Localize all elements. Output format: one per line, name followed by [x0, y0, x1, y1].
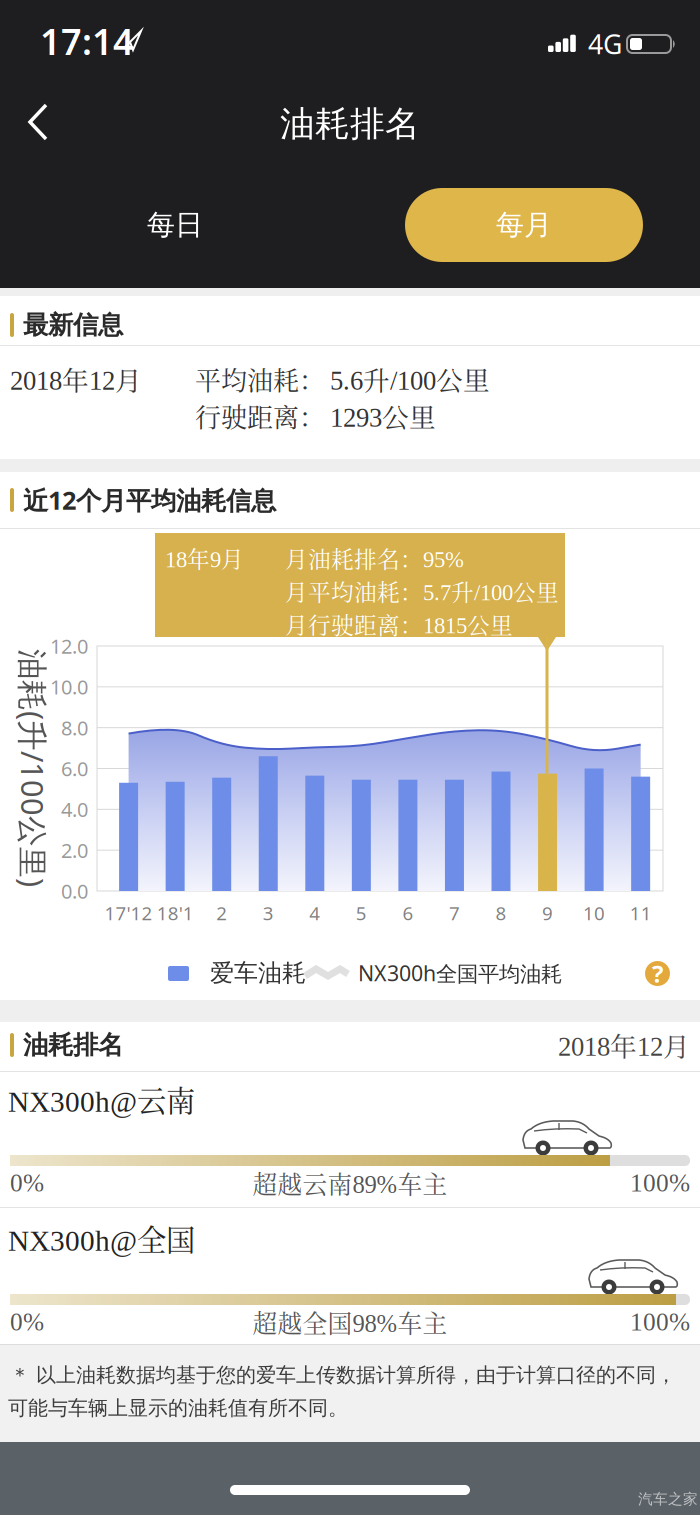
staticText: 2.0 — [61, 837, 88, 863]
staticText: 12.0 — [50, 633, 88, 659]
staticText: 10.0 — [50, 674, 88, 700]
staticText: 8.0 — [61, 714, 88, 741]
staticText: 3 — [263, 901, 274, 925]
staticText: ? — [652, 958, 663, 989]
staticText: 2 — [216, 901, 227, 925]
staticText: 10 — [583, 901, 605, 925]
staticText: NX300h@全国 — [8, 1217, 195, 1259]
staticText: 18'1 — [157, 901, 194, 925]
staticText: 汽车之家 — [638, 1490, 698, 1508]
staticText: ＊ 以上油耗数据均基于您的爱车上传数据计算所得，由于计算口径的不同， — [10, 1363, 676, 1387]
staticText: 爱车油耗 — [210, 958, 306, 988]
staticText: 月平均油耗：5.7升/100公里 — [285, 575, 559, 607]
staticText: 6 — [402, 901, 413, 925]
staticText: 100% — [630, 1308, 690, 1336]
button[interactable]: 每月 — [405, 188, 643, 262]
button[interactable]: 帮助 — [645, 961, 670, 986]
staticText: 月油耗排名：95% — [285, 542, 464, 574]
staticText: 行驶距离： — [195, 397, 325, 435]
staticText: NX300h全国平均油耗 — [358, 959, 562, 987]
staticText: 4.0 — [61, 796, 88, 823]
staticText: 0% — [10, 1169, 44, 1197]
button[interactable]: 返回 — [0, 102, 56, 142]
staticText: 100% — [630, 1169, 690, 1197]
staticText: 油耗(升/100公里) — [0, 748, 152, 788]
staticText: 1293公里 — [330, 397, 436, 435]
staticText: 4 — [309, 901, 320, 925]
staticText: 6.0 — [61, 755, 88, 782]
button[interactable]: 每日 — [0, 188, 350, 262]
staticText: 4G — [588, 26, 622, 62]
staticText: 0% — [10, 1308, 44, 1336]
staticText: 17'12 — [105, 901, 153, 925]
staticText: 每日 — [147, 208, 203, 242]
staticText: 每月 — [496, 208, 552, 242]
staticText: 可能与车辆上显示的油耗值有所不同。 — [8, 1396, 348, 1420]
staticText: NX300h@云南 — [8, 1078, 195, 1120]
staticText: 9 — [542, 901, 553, 925]
staticText: 超越全国98%车主 — [252, 1304, 447, 1340]
staticText: 油耗排名 — [23, 1029, 123, 1060]
staticText: 5.6升/100公里 — [330, 360, 490, 398]
staticText: 2018年12月 — [558, 1026, 690, 1064]
staticText: 超越云南89%车主 — [252, 1165, 447, 1201]
staticText: 月行驶距离：1815公里 — [285, 608, 513, 640]
staticText: 8 — [495, 901, 506, 925]
staticText: 最新信息 — [23, 309, 123, 340]
staticText: 11 — [630, 901, 652, 925]
staticText: 17:14 — [40, 17, 134, 65]
staticText: 油耗排名 — [280, 103, 420, 145]
staticText: 5 — [356, 901, 367, 925]
staticText: 0.0 — [61, 878, 88, 904]
staticText: 18年9月 — [165, 542, 244, 574]
staticText: 2018年12月 — [10, 360, 142, 398]
staticText: 近12个月平均油耗信息 — [23, 483, 276, 517]
staticText: 平均油耗： — [195, 360, 325, 398]
staticText: 7 — [449, 901, 460, 925]
